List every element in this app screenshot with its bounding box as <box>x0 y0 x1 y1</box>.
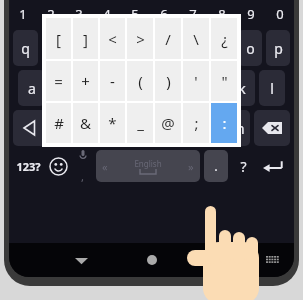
staticText: x <box>89 119 97 138</box>
button[interactable]: a <box>18 70 45 106</box>
staticText: b <box>175 119 184 138</box>
button[interactable]: y <box>154 30 178 66</box>
button[interactable]: n <box>196 110 221 146</box>
staticText: : <box>222 113 227 133</box>
button[interactable]: p <box>266 30 290 66</box>
staticText: [ <box>56 29 61 49</box>
button[interactable]: b <box>167 110 192 146</box>
staticText: l <box>270 79 274 98</box>
staticText: m <box>231 119 245 138</box>
button[interactable]: ⌫ <box>254 110 290 146</box>
button[interactable]: 7 <box>178 0 207 28</box>
button[interactable]: : <box>211 103 237 143</box>
button[interactable]: * <box>100 103 125 143</box>
staticText: i <box>220 39 224 58</box>
button[interactable]: 6 <box>149 0 178 28</box>
button[interactable]: « <box>96 150 200 182</box>
button[interactable]: r <box>98 30 122 66</box>
button[interactable]: \ <box>183 18 209 59</box>
button[interactable]: ; <box>183 103 209 143</box>
other: Hide keyboard <box>75 254 88 267</box>
button[interactable]: f <box>109 70 135 106</box>
button[interactable]: k <box>229 70 255 106</box>
button[interactable]: g <box>139 70 165 106</box>
staticText: # <box>54 113 64 133</box>
button[interactable]: [ <box>46 18 71 59</box>
staticText: h <box>178 79 187 98</box>
button[interactable]: m <box>225 110 250 146</box>
button[interactable]: j <box>199 70 225 106</box>
staticText: 123? <box>16 159 41 174</box>
button[interactable]: d <box>79 70 105 106</box>
button[interactable]: u <box>182 30 206 66</box>
staticText: @ <box>161 113 175 133</box>
button[interactable]: = <box>46 61 71 101</box>
button[interactable]: ( <box>127 61 153 101</box>
button[interactable]: " <box>211 61 237 101</box>
button[interactable]: ⇧ <box>13 110 48 146</box>
button[interactable]: & <box>73 103 98 143</box>
staticText: k <box>238 79 246 98</box>
button[interactable]: . <box>204 150 228 182</box>
button[interactable]: h <box>169 70 195 106</box>
button[interactable]: < <box>100 18 125 59</box>
staticText: " <box>221 71 228 91</box>
button[interactable]: / <box>155 18 181 59</box>
button[interactable]: c <box>109 110 134 146</box>
button[interactable]: 0 <box>265 0 294 28</box>
staticText: ( <box>138 71 143 91</box>
button[interactable]: 2 <box>37 0 65 28</box>
staticText: j <box>210 79 214 98</box>
button[interactable]: 3 <box>65 0 93 28</box>
staticText: 7 <box>189 5 197 23</box>
staticText: r <box>107 39 113 58</box>
button[interactable]: o <box>238 30 262 66</box>
button[interactable]: t <box>126 30 150 66</box>
button[interactable]: 4 <box>93 0 121 28</box>
staticText: ) <box>166 71 171 91</box>
staticText: - <box>110 71 115 91</box>
button[interactable]: Voice input <box>71 148 94 184</box>
other: Switch keyboard <box>266 256 280 265</box>
button[interactable]: _ <box>127 103 153 143</box>
button[interactable]: Emoji <box>45 148 71 184</box>
staticText: ; <box>194 113 199 133</box>
button[interactable]: # <box>46 103 71 143</box>
button[interactable]: z <box>52 110 76 146</box>
button[interactable]: @ <box>155 103 181 143</box>
staticText: a <box>28 79 36 98</box>
staticText: » <box>188 159 194 174</box>
button[interactable]: ? <box>230 148 256 184</box>
button[interactable]: 1 <box>9 0 37 28</box>
button[interactable]: ' <box>183 61 209 101</box>
button[interactable]: > <box>127 18 153 59</box>
button[interactable]: Home <box>147 255 157 265</box>
button[interactable]: 5 <box>121 0 149 28</box>
button[interactable]: ¿ <box>211 18 237 59</box>
staticText: 0 <box>276 5 284 23</box>
staticText: p <box>274 39 283 58</box>
staticText: ¿ <box>221 29 228 49</box>
button[interactable]: l <box>259 70 285 106</box>
staticText: 4 <box>103 5 111 23</box>
button[interactable]: - <box>100 61 125 101</box>
button[interactable]: i <box>210 30 234 66</box>
button[interactable]: ) <box>155 61 181 101</box>
button[interactable]: 9 <box>236 0 265 28</box>
staticText: ' <box>194 71 198 91</box>
staticText: < <box>108 29 117 49</box>
button[interactable]: q <box>13 30 38 66</box>
button[interactable]: Enter <box>256 148 292 184</box>
button[interactable]: + <box>73 61 98 101</box>
staticText: / <box>165 29 171 49</box>
button[interactable]: x <box>80 110 105 146</box>
button[interactable]: e <box>70 30 94 66</box>
staticText: ] <box>83 29 88 49</box>
button[interactable]: 123? <box>11 148 45 184</box>
button[interactable]: s <box>49 70 75 106</box>
button[interactable]: 8 <box>207 0 236 28</box>
button[interactable]: w <box>42 30 66 66</box>
button[interactable]: v <box>138 110 163 146</box>
staticText: d <box>88 79 97 98</box>
button[interactable]: ] <box>73 18 98 59</box>
